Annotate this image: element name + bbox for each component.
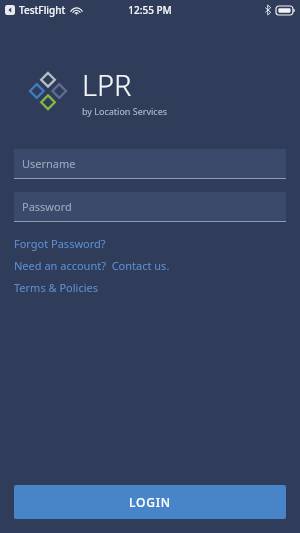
staticText: LPR <box>82 65 132 104</box>
staticText: Terms & Policies <box>14 280 98 295</box>
staticText: Forgot Password? <box>14 236 106 251</box>
staticText: by Location Services <box>82 105 168 117</box>
staticText: Need an account? Contact us. <box>14 258 170 273</box>
staticText: Password <box>22 199 72 214</box>
button[interactable]: Password <box>14 192 286 222</box>
button[interactable]: Terms & Policies <box>14 280 286 295</box>
staticText: 12:55 PM <box>128 3 172 17</box>
staticText: LOGIN <box>129 494 171 510</box>
button[interactable]: Forgot Password? <box>14 236 286 251</box>
button[interactable]: Need an account? Contact us. <box>14 258 286 273</box>
button[interactable]: Username <box>14 149 286 179</box>
button[interactable]: LOGIN <box>14 485 286 519</box>
staticText: TestFlight <box>19 3 66 17</box>
staticText: Username <box>22 156 76 171</box>
